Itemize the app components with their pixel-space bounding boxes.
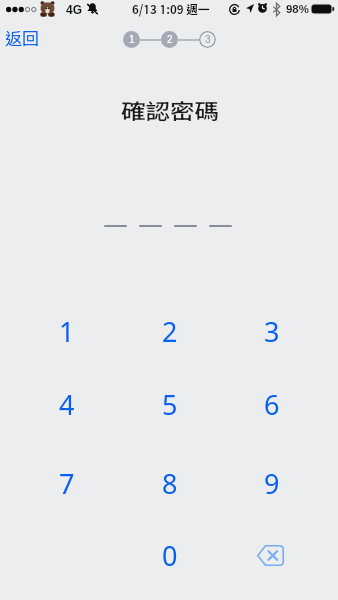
staticText: 返回 <box>5 29 39 49</box>
staticText: 7 <box>59 465 75 502</box>
button[interactable]: 8 <box>118 447 221 520</box>
staticText: 4G <box>66 3 83 16</box>
button[interactable]: 2 <box>118 295 221 368</box>
staticText: 3 <box>205 34 211 45</box>
button[interactable]: 7 <box>15 447 118 520</box>
staticText: 3 <box>264 313 280 350</box>
staticText: 98% <box>286 3 309 16</box>
staticText: 確認密碼 <box>121 98 219 123</box>
button[interactable]: 6 <box>220 368 323 441</box>
staticText: 9 <box>264 465 280 502</box>
staticText: 6/13 1:09 週一 <box>132 3 210 17</box>
button[interactable]: 5 <box>118 368 221 441</box>
button[interactable]: 4 <box>15 368 118 441</box>
button[interactable]: 返回 <box>0 25 47 53</box>
staticText: 1 <box>129 34 135 45</box>
button[interactable]: 1 <box>15 295 118 368</box>
staticText: 8 <box>162 465 178 502</box>
staticText: 2 <box>162 313 178 350</box>
staticText: 4 <box>59 386 75 423</box>
button[interactable]: 9 <box>220 447 323 520</box>
staticText: 6 <box>264 386 280 423</box>
button[interactable]: Delete <box>220 519 323 592</box>
staticText: 1 <box>59 313 75 350</box>
staticText: 2 <box>167 34 173 45</box>
staticText: 0 <box>162 537 178 574</box>
staticText: 5 <box>162 386 178 423</box>
button[interactable]: 3 <box>220 295 323 368</box>
button[interactable]: 0 <box>118 519 221 592</box>
